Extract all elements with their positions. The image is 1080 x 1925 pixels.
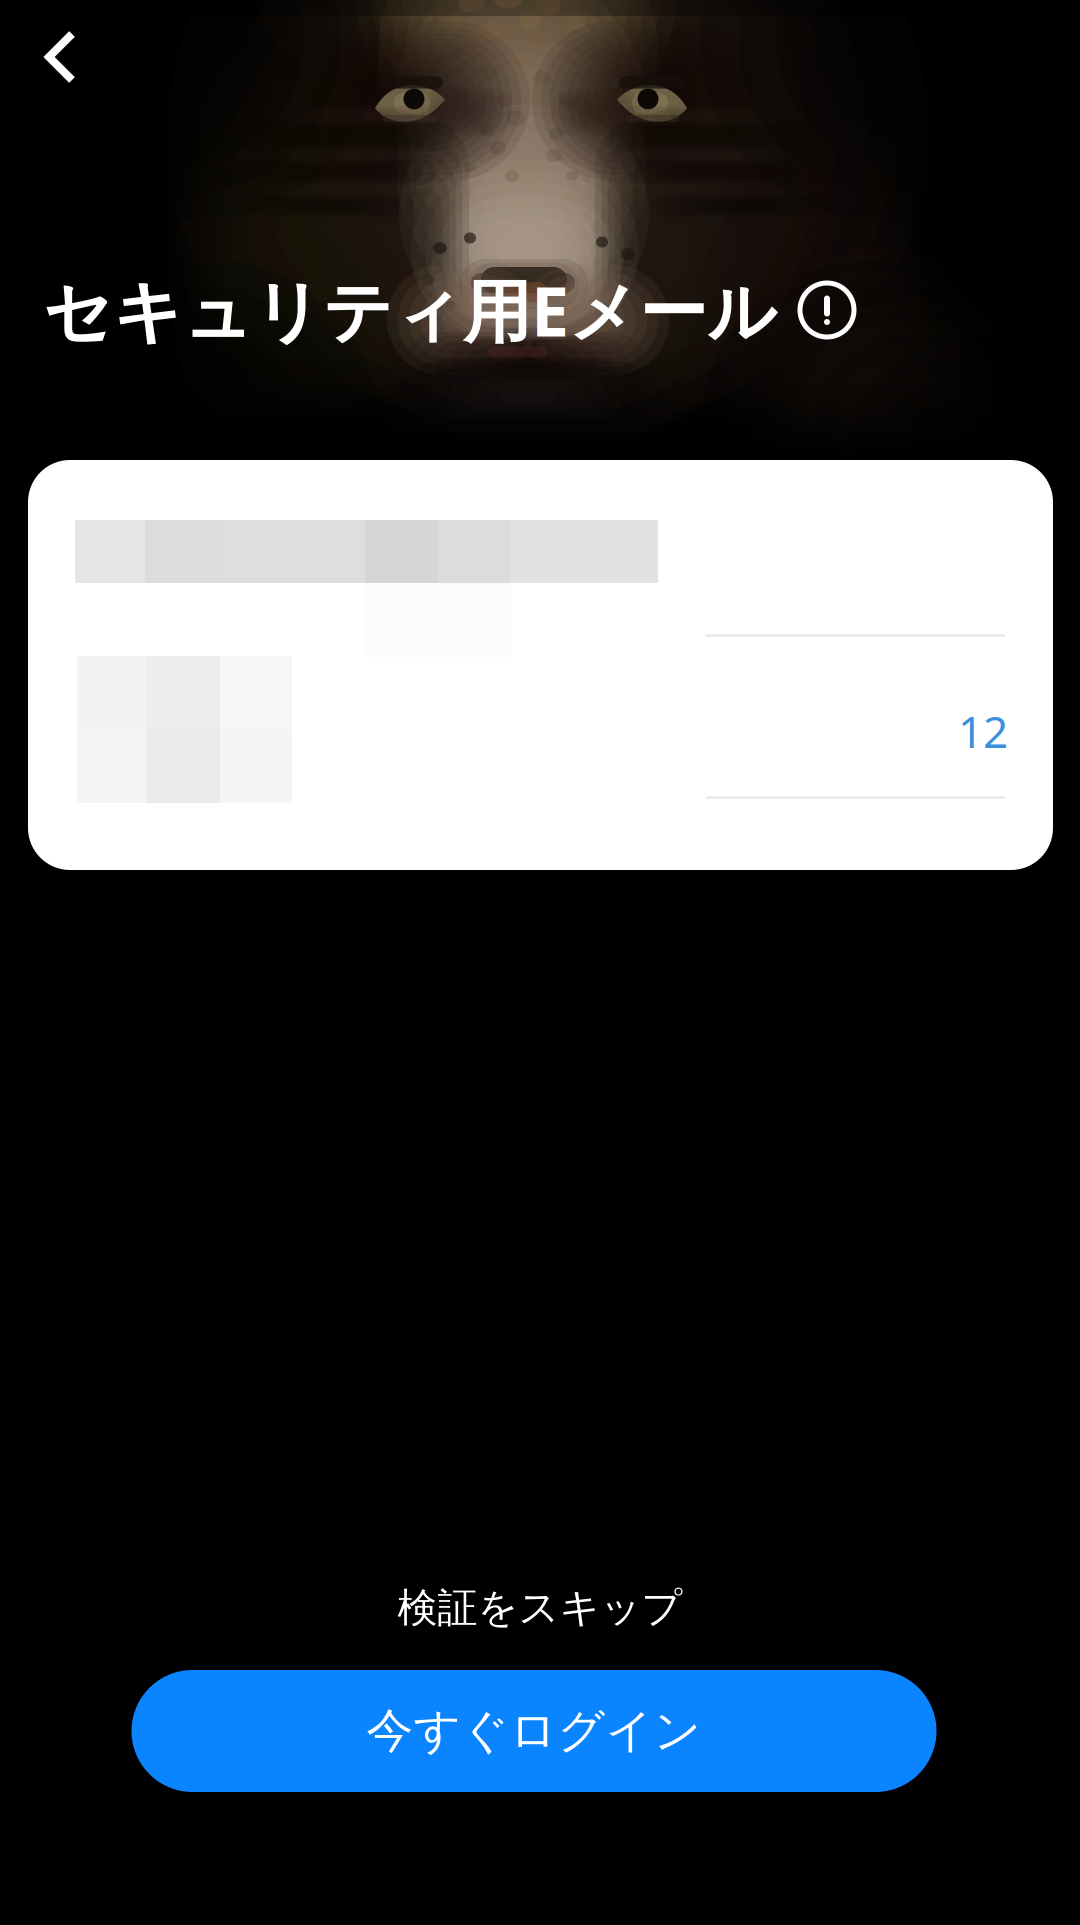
staticText: 今すぐログイン (366, 1702, 701, 1760)
button[interactable]: 今すぐログイン (131, 1670, 936, 1792)
staticText: セキュリティ用Eメール (43, 265, 777, 355)
staticText: 12 (958, 702, 1008, 760)
staticText: 検証をスキップ (397, 1583, 682, 1632)
button[interactable]: 検証をスキップ (340, 1570, 740, 1646)
button[interactable]: Back (8, 10, 104, 104)
